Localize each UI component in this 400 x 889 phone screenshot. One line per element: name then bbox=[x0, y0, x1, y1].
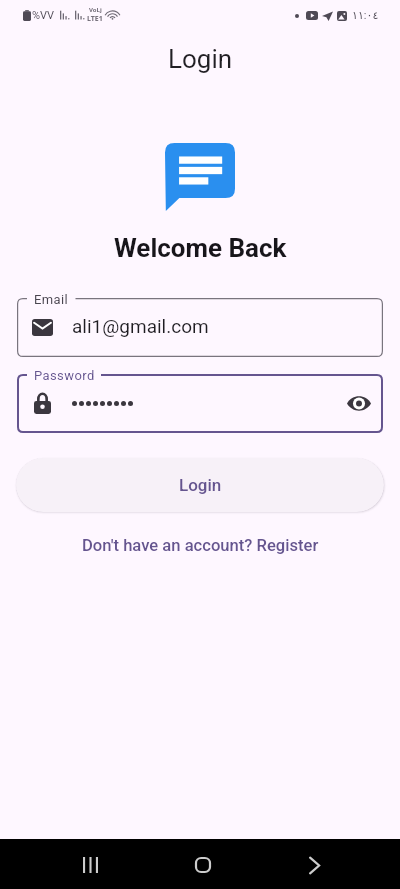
button[interactable]: Home bbox=[179, 841, 227, 889]
button[interactable]: Show password bbox=[17, 374, 383, 433]
button[interactable]: Recent apps bbox=[66, 841, 114, 889]
button[interactable]: Login bbox=[16, 458, 384, 512]
staticText: ١١:٠٤ bbox=[352, 9, 379, 22]
staticText: %VV bbox=[32, 9, 55, 22]
staticText: Email bbox=[34, 292, 69, 307]
staticText: Login bbox=[168, 44, 233, 74]
button[interactable]: ali1@gmail.com bbox=[17, 298, 383, 357]
staticText: LTE1 bbox=[87, 14, 103, 24]
staticText: ali1@gmail.com bbox=[72, 315, 209, 337]
staticText: Password bbox=[34, 368, 95, 383]
button[interactable]: Don't have an account? Register bbox=[82, 536, 319, 555]
button[interactable]: Back bbox=[290, 841, 338, 889]
staticText: Login bbox=[179, 475, 222, 495]
button[interactable]: Show password bbox=[346, 391, 372, 417]
staticText: Welcome Back bbox=[114, 233, 287, 263]
staticText: VoLj bbox=[89, 6, 102, 14]
